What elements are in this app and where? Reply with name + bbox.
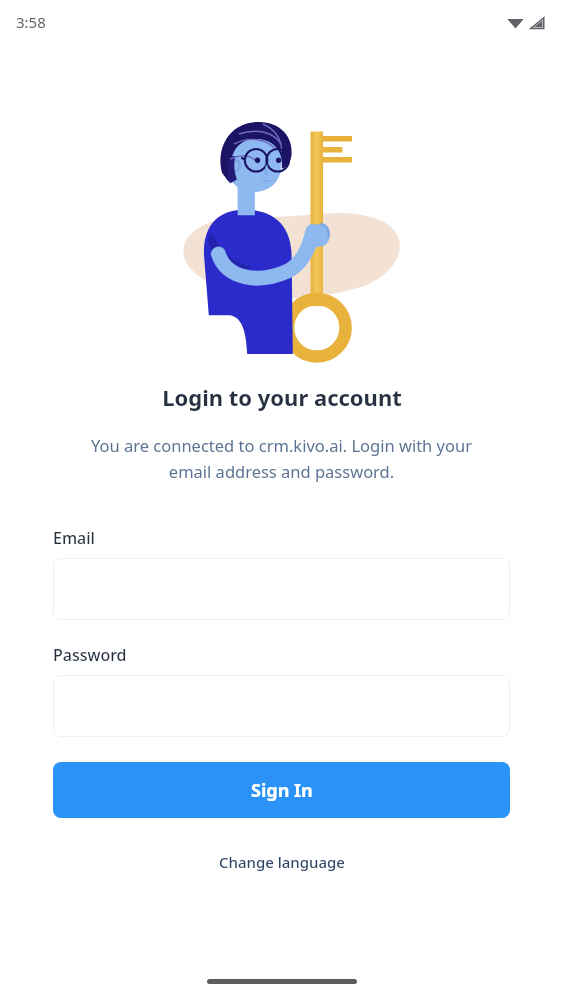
staticText: You are connected to crm.kivo.ai. Login … [50, 434, 513, 483]
staticText: Login to your account [162, 382, 402, 412]
button[interactable] [53, 675, 510, 737]
staticText: Password [53, 644, 127, 666]
button[interactable]: Change language [211, 846, 353, 878]
staticText: 3:58 [16, 12, 46, 32]
button[interactable]: Sign In [53, 762, 510, 818]
button[interactable] [53, 558, 510, 620]
staticText: Email [53, 527, 95, 549]
staticText: Sign In [251, 778, 313, 803]
staticText: Change language [219, 852, 345, 872]
